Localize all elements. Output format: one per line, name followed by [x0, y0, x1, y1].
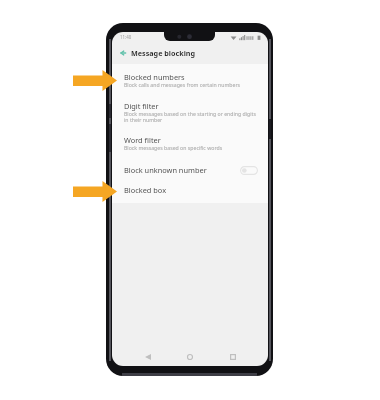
- staticText: 11:40: [120, 34, 132, 40]
- staticText: Word filter: [124, 135, 161, 145]
- staticText: Blocked numbers: [124, 72, 185, 82]
- staticText: Digit filter: [124, 101, 159, 111]
- button[interactable]: Blocked box: [112, 179, 268, 201]
- other: Pointer: [73, 181, 117, 202]
- button[interactable]: Block unknown number: [112, 159, 268, 181]
- button[interactable]: Digit filter: [112, 95, 268, 125]
- button[interactable]: Word filter: [112, 129, 268, 159]
- staticText: Block unknown number: [124, 165, 207, 175]
- button[interactable]: Navigate up: [116, 46, 129, 59]
- staticText: Message blocking: [131, 48, 195, 58]
- staticText: Block messages based on the starting or …: [124, 110, 256, 124]
- other: Pointer: [73, 70, 117, 91]
- button[interactable]: Blocked numbers: [112, 66, 268, 96]
- staticText: Blocked box: [124, 185, 167, 195]
- staticText: Block messages based on specific words: [124, 144, 223, 151]
- staticText: Block calls and messages from certain nu…: [124, 81, 241, 88]
- button[interactable]: Home: [183, 350, 197, 364]
- button[interactable]: Recent apps: [226, 350, 240, 364]
- button[interactable]: Back: [141, 350, 155, 364]
